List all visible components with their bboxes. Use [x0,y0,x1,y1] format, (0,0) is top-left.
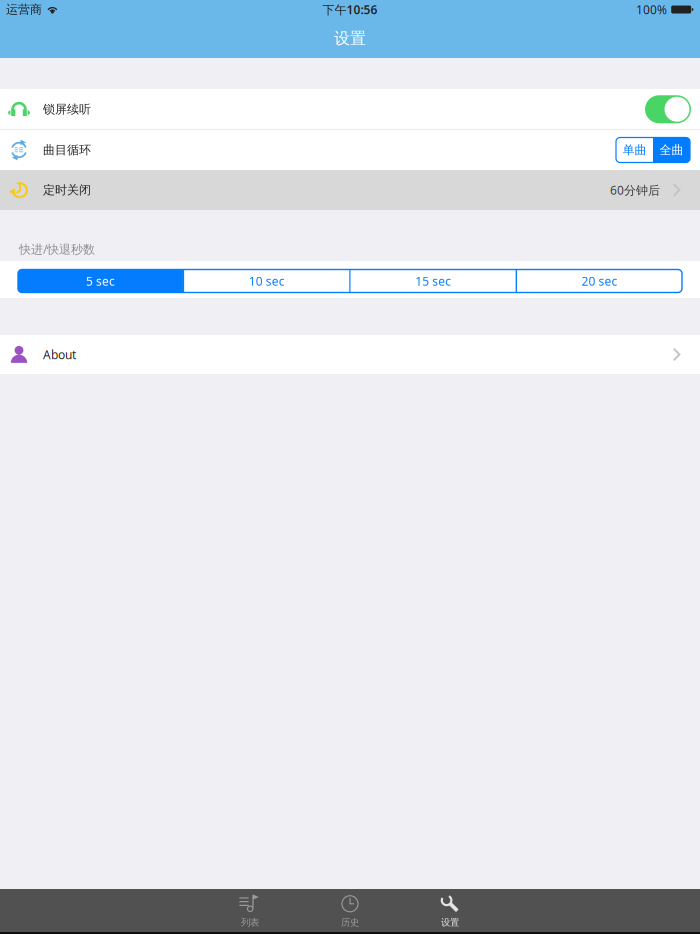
staticText: 历史 [341,917,359,928]
button[interactable]: 5 sec [18,269,183,292]
button[interactable]: 定时关闭 [0,170,700,210]
staticText: 5 sec [86,273,115,289]
staticText: About [43,346,76,362]
button[interactable]: 锁屏续听 [0,89,700,129]
staticText: 列表 [241,917,259,928]
staticText: 快进/快退秒数 [19,241,95,257]
staticText: 100% [636,1,667,17]
button[interactable]: 10 sec [184,269,349,292]
button[interactable]: 列表 [200,889,300,932]
button[interactable]: 20 sec [517,269,682,292]
button[interactable]: 单曲 [616,137,653,162]
staticText: 60分钟后 [610,182,660,198]
button[interactable]: 15 sec [351,269,516,292]
staticText: 下午10:56 [322,1,377,17]
staticText: 锁屏续听 [43,102,91,117]
staticText: 设置 [334,29,366,48]
staticText: 设置 [441,917,459,928]
staticText: 定时关闭 [43,183,91,197]
button[interactable]: 曲目循环 [0,130,700,170]
button[interactable]: 设置 [400,889,500,932]
staticText: 15 sec [415,273,451,289]
staticText: 曲目循环 [43,143,91,157]
staticText: 20 sec [581,273,617,289]
button[interactable]: 全曲 [653,137,690,162]
staticText: 单曲 [622,143,646,157]
button[interactable]: About [0,335,700,374]
staticText: 运营商 [6,2,42,17]
staticText: 10 sec [249,273,285,289]
staticText: 全曲 [659,143,683,157]
button[interactable]: 历史 [300,889,400,932]
